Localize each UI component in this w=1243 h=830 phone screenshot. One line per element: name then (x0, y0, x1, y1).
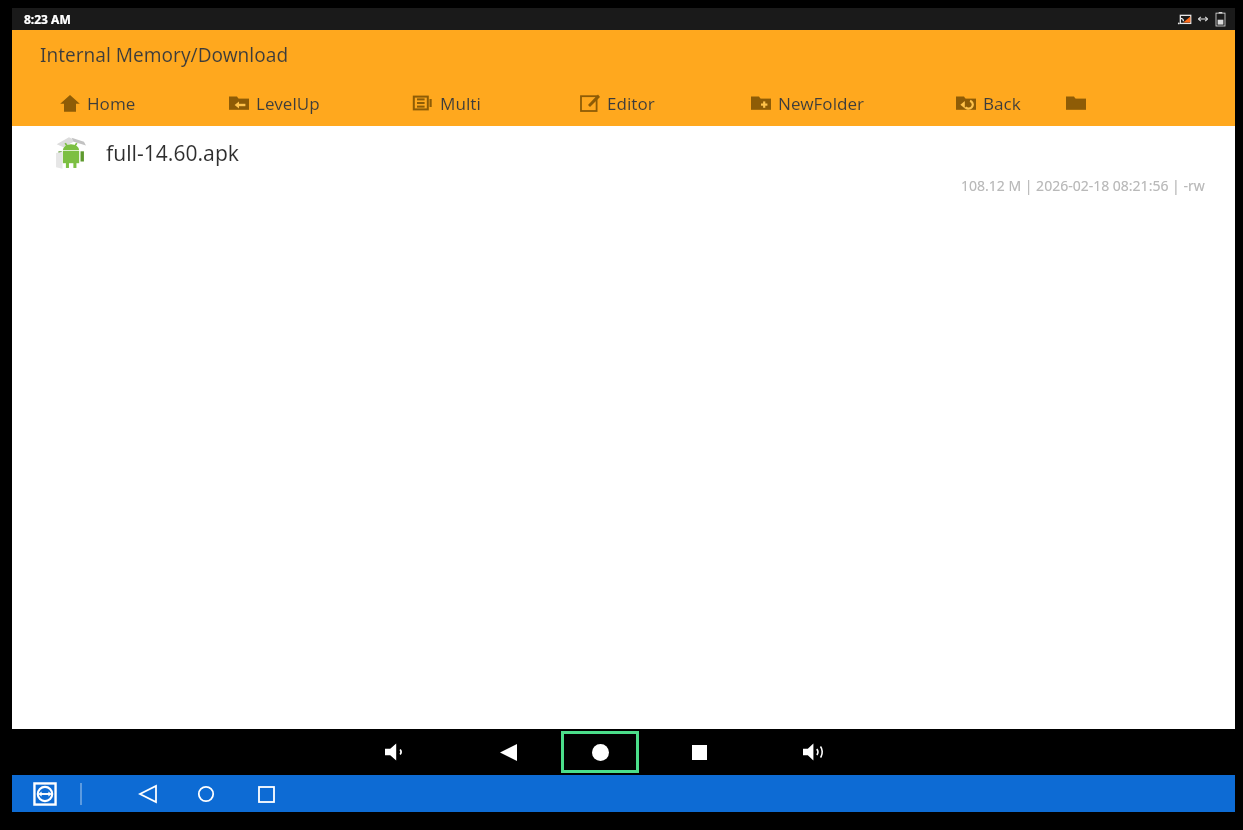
staticText: Back (983, 92, 1021, 115)
button[interactable]: Recents (671, 731, 727, 773)
button[interactable]: Editor (529, 80, 705, 126)
staticText: Multi (440, 92, 481, 115)
staticText: Editor (607, 92, 655, 115)
button[interactable]: NewFolder (705, 80, 911, 126)
staticText: LevelUp (256, 92, 320, 115)
button[interactable]: full-14.60.apk (12, 126, 1235, 195)
button[interactable]: Back (911, 80, 1066, 126)
button[interactable]: TeamViewer (32, 781, 58, 807)
button[interactable]: Internal Memory/Download (40, 42, 289, 68)
staticText: 8:23 AM (24, 11, 71, 27)
staticText: 108.12 M | 2026-02-18 08:21:56 | -rw (961, 176, 1205, 195)
button[interactable]: Multi (364, 80, 529, 126)
staticText: Home (87, 92, 136, 115)
staticText: full-14.60.apk (106, 139, 240, 168)
button[interactable]: Volume up (785, 731, 841, 773)
button[interactable]: Home (12, 80, 184, 126)
button[interactable]: Back (480, 731, 536, 773)
button[interactable]: Recents (244, 779, 288, 809)
button[interactable]: Home (561, 731, 639, 773)
staticText: NewFolder (778, 92, 865, 115)
button[interactable]: Back (126, 779, 170, 809)
button[interactable]: Volume down (367, 731, 423, 773)
button[interactable]: LevelUp (184, 80, 364, 126)
button[interactable]: Home (184, 779, 228, 809)
button[interactable]: More (1066, 80, 1096, 126)
